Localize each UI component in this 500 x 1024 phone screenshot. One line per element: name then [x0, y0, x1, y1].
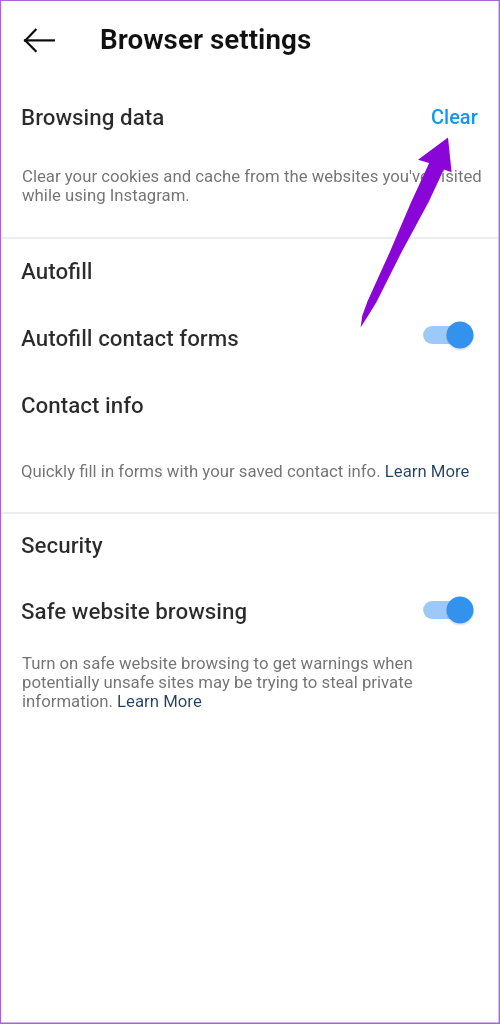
button[interactable]: Autofill contact forms [0, 313, 500, 363]
button[interactable]: Safe website browsing [0, 586, 500, 636]
staticText: Security [21, 532, 103, 558]
staticText: Autofill contact forms [21, 325, 488, 351]
staticText: Clear [431, 105, 478, 128]
button[interactable]: Browsing data [0, 101, 500, 133]
button[interactable]: Back [16, 16, 64, 64]
staticText: Safe website browsing [21, 598, 488, 624]
staticText: Browsing data [21, 104, 479, 130]
staticText: Contact info [21, 392, 144, 418]
button[interactable]: Clear [417, 98, 491, 134]
staticText: Browser settings [100, 23, 312, 56]
button[interactable]: Toggle setting [420, 590, 478, 630]
staticText: Autofill [21, 258, 93, 284]
staticText: Clear your cookies and cache from the we… [22, 166, 484, 205]
staticText: Quickly fill in forms with your saved co… [21, 461, 483, 481]
staticText: Turn on safe website browsing to get war… [22, 653, 434, 711]
button[interactable]: Toggle setting [420, 315, 478, 355]
